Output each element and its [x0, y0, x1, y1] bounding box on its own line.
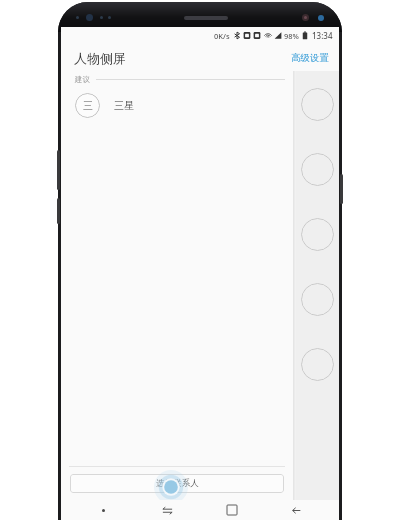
button[interactable]: 选择联系人 — [70, 474, 284, 493]
button[interactable]: Empty app slot — [301, 283, 334, 316]
button[interactable]: 高级设置 — [281, 48, 339, 68]
button[interactable]: Menu — [71, 500, 135, 520]
staticText: 建议 — [75, 75, 90, 84]
staticText: 选择联系人 — [156, 478, 199, 489]
button[interactable]: Back — [264, 500, 329, 520]
staticText: 三 — [83, 99, 93, 112]
button[interactable]: Recents — [135, 500, 199, 520]
staticText: 0K/s — [214, 31, 230, 41]
button[interactable]: Empty app slot — [301, 348, 334, 381]
staticText: 人物侧屏 — [74, 50, 126, 66]
button[interactable]: Home — [199, 500, 264, 520]
button[interactable]: Empty app slot — [301, 153, 334, 186]
staticText: 高级设置 — [291, 52, 329, 64]
staticText: 13:34 — [312, 30, 333, 41]
button[interactable]: Empty app slot — [301, 218, 334, 251]
staticText: 三星 — [114, 99, 134, 112]
button[interactable]: 三 — [61, 87, 293, 123]
button[interactable]: Empty app slot — [301, 88, 334, 121]
staticText: 98% — [284, 31, 299, 41]
